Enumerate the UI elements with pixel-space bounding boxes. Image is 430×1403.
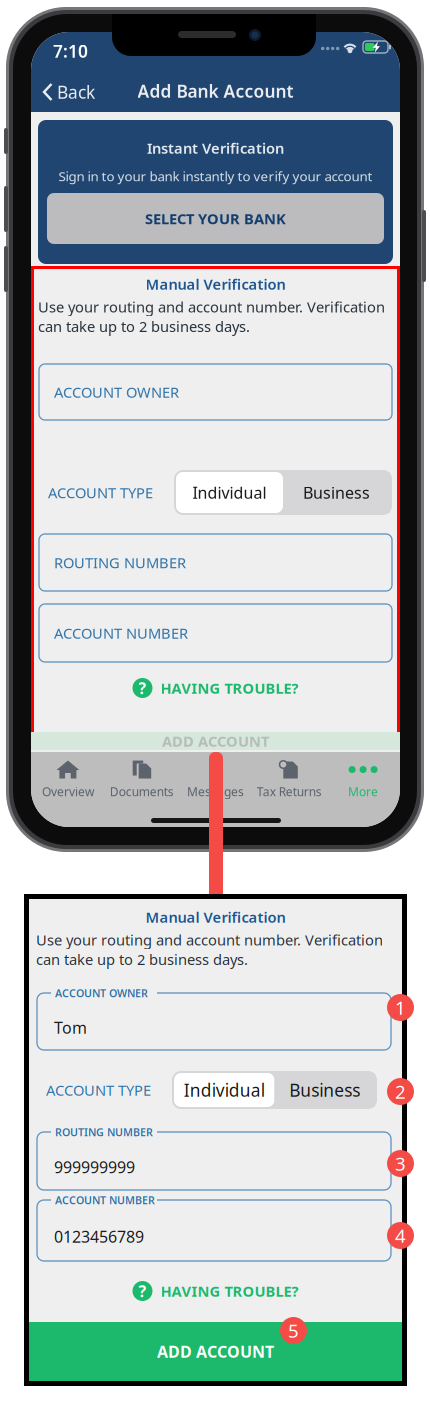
staticText: ACCOUNT TYPE	[48, 483, 153, 502]
button[interactable]: Business	[274, 1073, 375, 1107]
staticText: Manual Verification	[145, 907, 285, 927]
staticText: 2	[395, 1079, 406, 1104]
staticText: 0123456789	[54, 1226, 144, 1247]
button[interactable]: SELECT YOUR BANK	[47, 193, 384, 244]
staticText: 4	[395, 1223, 406, 1248]
staticText: 3	[395, 1151, 406, 1176]
staticText: Individual	[184, 1078, 265, 1101]
staticText: Manual Verification	[145, 274, 285, 294]
staticText: 5	[288, 1318, 299, 1343]
staticText: HAVING TROUBLE?	[160, 1281, 298, 1301]
button[interactable]: Messages	[179, 757, 252, 801]
staticText: ?	[138, 1280, 146, 1302]
staticText: ACCOUNT OWNER	[54, 382, 179, 402]
button[interactable]: 0123456789	[37, 1200, 391, 1261]
button[interactable]: Tax Returns	[252, 757, 326, 801]
staticText: ACCOUNT NUMBER	[55, 1193, 155, 1207]
staticText: SELECT YOUR BANK	[145, 209, 286, 228]
staticText: Tom	[54, 1017, 87, 1038]
button[interactable]: More	[326, 757, 400, 801]
staticText: ROUTING NUMBER	[54, 553, 186, 572]
staticText: Instant Verification	[147, 138, 284, 158]
button[interactable]: Individual	[174, 1073, 274, 1107]
button[interactable]: ?	[31, 678, 400, 698]
button[interactable]: ADD ACCOUNT	[29, 1322, 402, 1381]
button[interactable]: Overview	[31, 757, 105, 801]
staticText: 1	[395, 995, 406, 1020]
staticText: ROUTING NUMBER	[55, 1125, 153, 1139]
staticText: HAVING TROUBLE?	[160, 678, 298, 698]
staticText: 7:10	[53, 39, 88, 62]
button[interactable]: ACCOUNT NUMBER	[39, 604, 392, 662]
button[interactable]: Individual	[176, 472, 283, 513]
staticText: ACCOUNT TYPE	[46, 1080, 151, 1100]
staticText: Add Bank Account	[137, 79, 293, 102]
staticText: ADD ACCOUNT	[162, 731, 269, 751]
staticText: Messages	[187, 783, 244, 799]
button[interactable]: Documents	[105, 757, 179, 801]
staticText: Business	[289, 1078, 360, 1101]
button[interactable]: ACCOUNT OWNER	[39, 364, 392, 420]
staticText: Sign in to your bank instantly to verify…	[58, 167, 372, 185]
staticText: More	[348, 783, 378, 799]
staticText: Business	[303, 482, 370, 503]
button[interactable]: Back	[37, 76, 119, 108]
staticText: Documents	[110, 783, 174, 799]
staticText: ACCOUNT NUMBER	[54, 623, 188, 643]
button[interactable]: 999999999	[37, 1132, 391, 1190]
staticText: ADD ACCOUNT	[157, 1341, 274, 1362]
button[interactable]: Tom	[37, 993, 391, 1050]
staticText: Individual	[192, 482, 266, 503]
button[interactable]: ROUTING NUMBER	[39, 534, 392, 591]
staticText: Use your routing and account number. Ver…	[36, 930, 383, 969]
button[interactable]: ?	[29, 1281, 402, 1301]
staticText: Use your routing and account number. Ver…	[38, 297, 385, 336]
staticText: Back	[57, 80, 95, 103]
staticText: ACCOUNT OWNER	[55, 986, 148, 1000]
staticText: ?	[138, 677, 146, 699]
staticText: Overview	[42, 783, 94, 799]
button[interactable]: Business	[283, 472, 390, 513]
staticText: 999999999	[54, 1156, 135, 1178]
staticText: Tax Returns	[257, 783, 322, 799]
